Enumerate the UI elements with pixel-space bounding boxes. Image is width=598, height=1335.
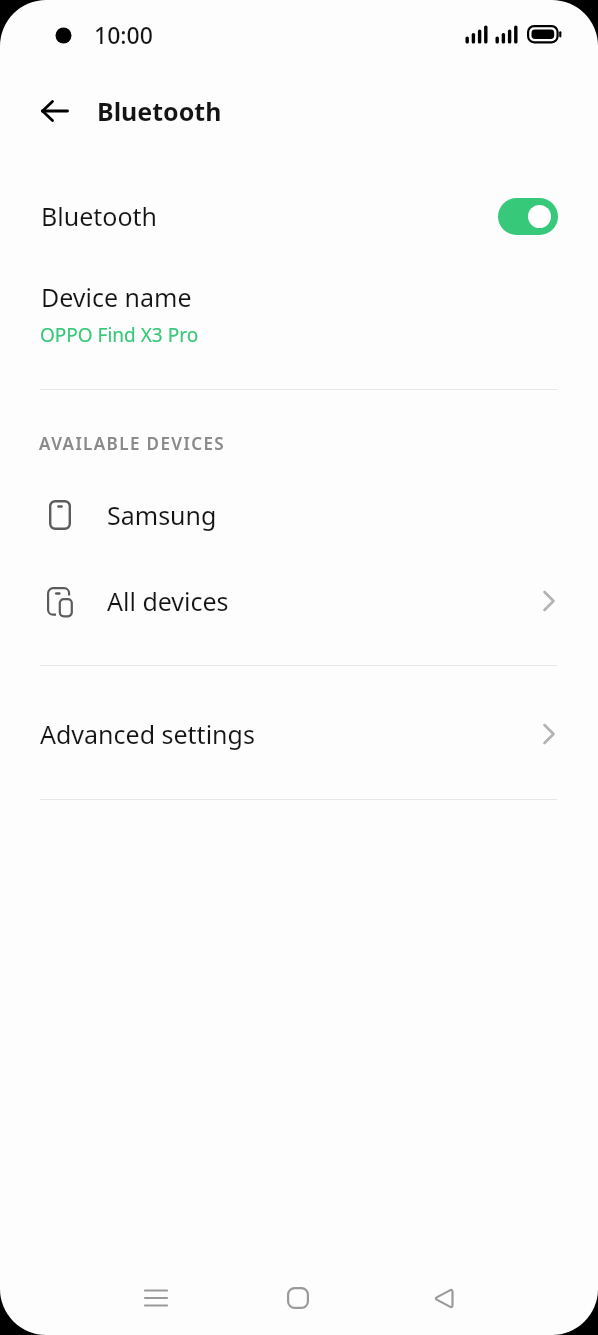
staticText: OPPO Find X3 Pro <box>40 322 199 348</box>
button[interactable]: All devices <box>0 563 598 639</box>
button[interactable]: Bluetooth <box>0 178 598 254</box>
button[interactable] <box>274 1274 322 1322</box>
staticText: Bluetooth <box>97 94 222 128</box>
staticText: Samsung <box>107 498 217 532</box>
button[interactable]: Advanced settings <box>0 696 598 772</box>
button[interactable]: Samsung <box>0 477 598 553</box>
staticText: 10:00 <box>94 19 153 50</box>
button[interactable] <box>132 1274 180 1322</box>
staticText: All devices <box>107 584 229 618</box>
staticText: AVAILABLE DEVICES <box>39 432 226 455</box>
staticText: Bluetooth <box>41 199 158 233</box>
staticText: Device name <box>41 280 192 314</box>
staticText: Advanced settings <box>40 717 255 751</box>
button[interactable] <box>419 1274 467 1322</box>
button[interactable] <box>30 90 80 132</box>
button[interactable]: Device name <box>0 262 598 362</box>
button[interactable] <box>498 198 558 235</box>
